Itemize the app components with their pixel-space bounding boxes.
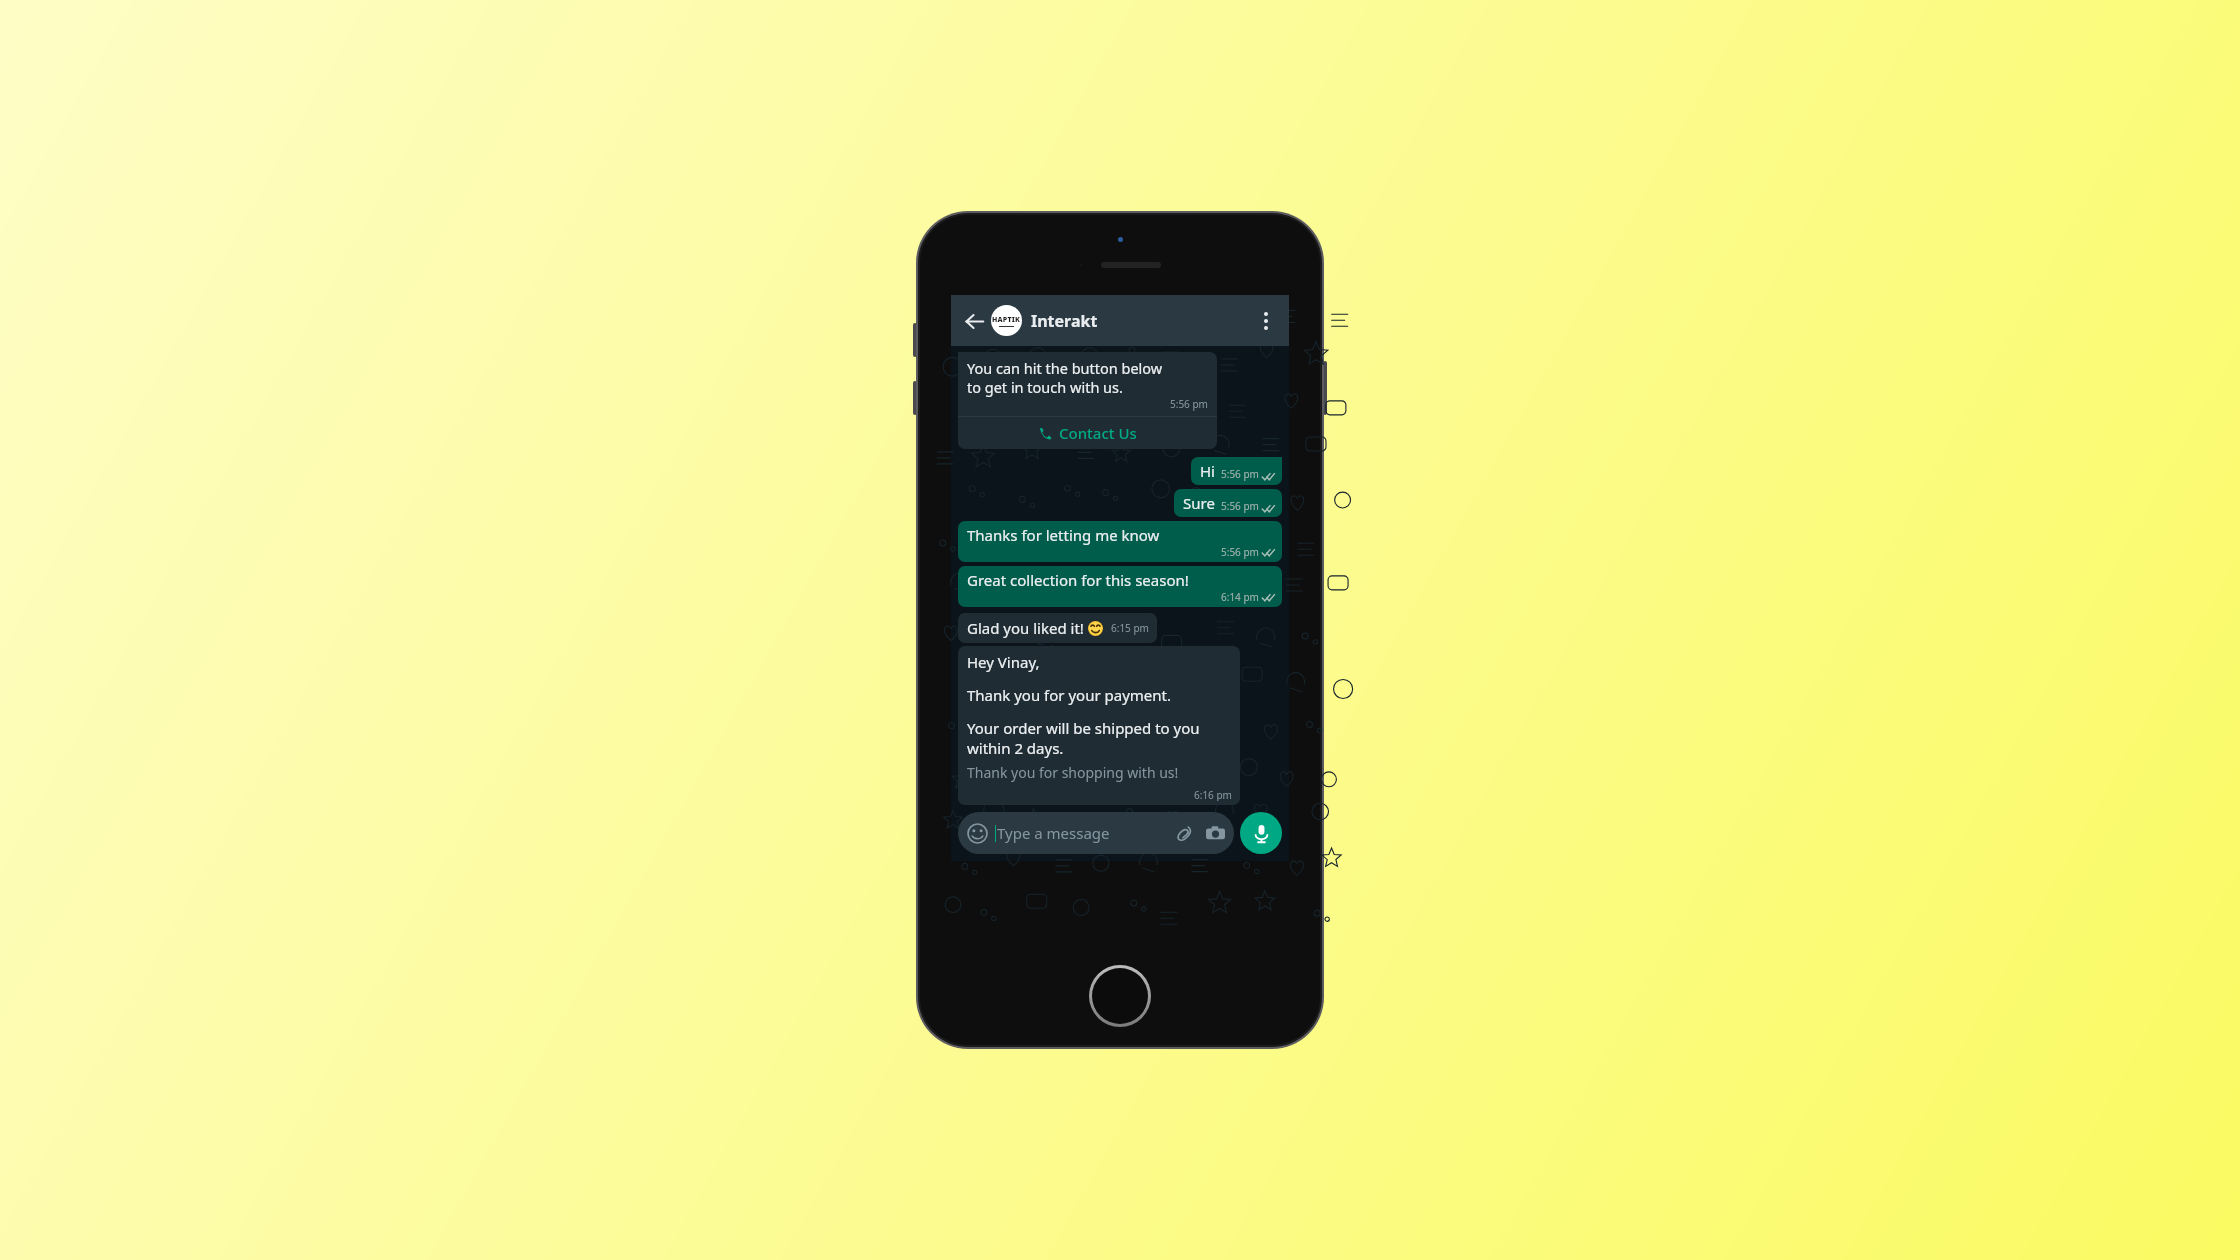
- button[interactable]: HAPTIK: [991, 305, 1022, 336]
- staticText: Type a message: [997, 823, 1110, 843]
- staticText: Contact Us: [1059, 423, 1137, 443]
- button[interactable]: Hi: [1191, 457, 1282, 485]
- button[interactable]: Thanks for letting me know: [958, 521, 1282, 562]
- staticText: Your order will be shipped to you within…: [967, 718, 1200, 758]
- staticText: 5:56 pm: [1170, 397, 1208, 411]
- staticText: Thank you for shopping with us!: [967, 763, 1179, 782]
- staticText: 6:15 pm: [1111, 621, 1149, 635]
- staticText: You can hit the button below to get in t…: [967, 358, 1163, 397]
- staticText: Hey Vinay,: [967, 652, 1040, 672]
- button[interactable]: More options: [1251, 306, 1281, 336]
- button[interactable]: Sure: [1174, 489, 1282, 517]
- button[interactable]: Emoji: [958, 812, 1234, 854]
- button[interactable]: Camera: [1205, 823, 1225, 843]
- button[interactable]: Glad you liked it!: [958, 613, 1157, 643]
- staticText: Thanks for letting me know: [967, 525, 1160, 545]
- staticText: 6:16 pm: [1194, 788, 1232, 801]
- staticText: Glad you liked it!: [967, 618, 1088, 638]
- staticText: HAPTIK: [992, 315, 1021, 325]
- staticText: 5:56 pm: [1221, 545, 1259, 559]
- button[interactable]: Voice message: [1240, 812, 1282, 854]
- staticText: Great collection for this season!: [967, 570, 1189, 590]
- button[interactable]: Great collection for this season!: [958, 566, 1282, 607]
- staticText: Interakt: [1031, 310, 1098, 332]
- staticText: 5:56 pm: [1221, 467, 1259, 481]
- staticText: Thank you for your payment.: [967, 685, 1172, 705]
- button[interactable]: Hey Vinay,: [958, 646, 1240, 805]
- button[interactable]: Contact Us: [958, 417, 1217, 449]
- button[interactable]: Emoji: [967, 823, 988, 844]
- staticText: 6:14 pm: [1221, 590, 1259, 604]
- button[interactable]: Attach: [1174, 823, 1194, 843]
- button[interactable]: Back: [959, 306, 989, 336]
- staticText: 5:56 pm: [1221, 499, 1259, 513]
- staticText: Hi: [1200, 461, 1215, 481]
- staticText: Sure: [1183, 493, 1215, 513]
